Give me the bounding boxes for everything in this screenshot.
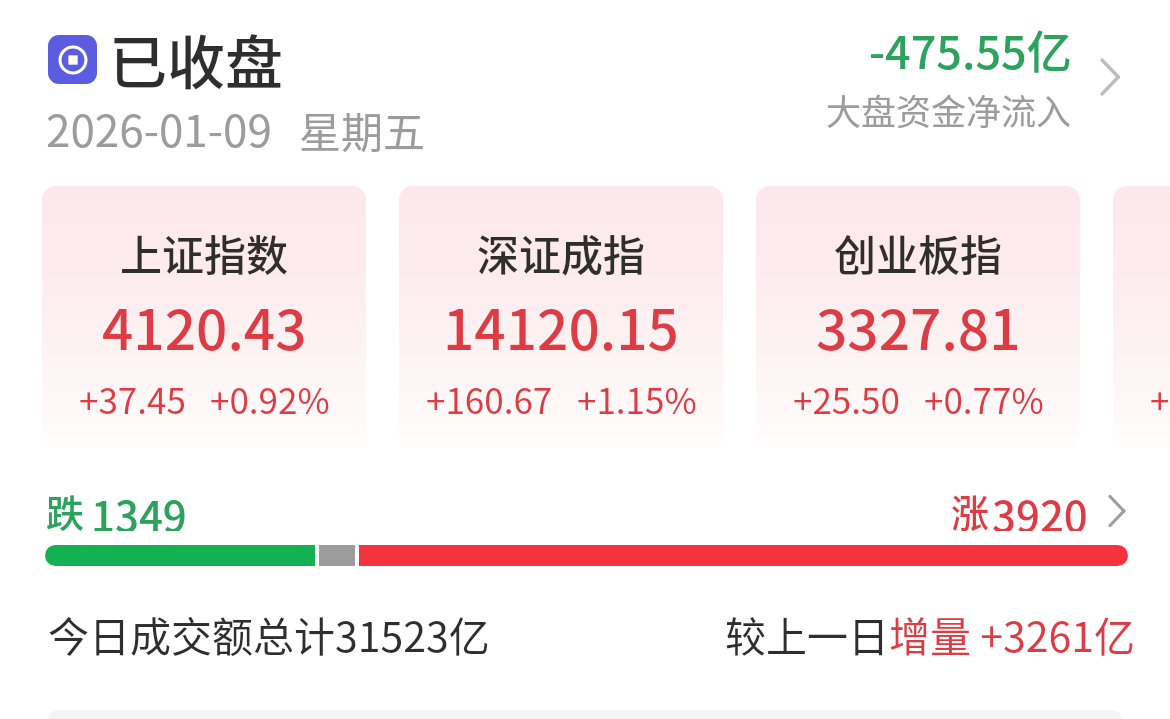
button[interactable]: -475.55亿: [800, 17, 1130, 137]
staticText: +1.15%: [577, 373, 697, 424]
button[interactable]: 创业板指: [756, 186, 1080, 448]
staticText: 大盘资金净流入: [826, 84, 1072, 135]
staticText: 星期五: [299, 99, 426, 160]
staticText: 3920: [992, 483, 1088, 531]
staticText: 4120.43: [102, 286, 307, 366]
staticText: 上证指数: [120, 222, 289, 283]
staticText: 深证成指: [477, 222, 646, 283]
staticText: 涨: [951, 483, 990, 531]
staticText: 2026-01-09: [46, 96, 272, 160]
staticText: +160.67: [426, 373, 553, 424]
staticText: 3327.81: [816, 286, 1021, 366]
button[interactable]: 科创50指: [1113, 186, 1170, 448]
staticText: +18.45: [1150, 373, 1170, 424]
staticText: 14120.15: [443, 286, 679, 366]
staticText: -475.55亿: [869, 17, 1072, 82]
other: 查看涨跌家数: [1108, 491, 1130, 531]
staticText: 已收盘: [109, 17, 284, 101]
staticText: 跌: [46, 483, 85, 531]
button[interactable]: 上证指数: [42, 186, 366, 448]
staticText: +0.77%: [924, 373, 1044, 424]
staticText: +0.92%: [210, 373, 330, 424]
button[interactable]: 涨: [951, 483, 1130, 531]
staticText: 今日成交额总计31523亿: [48, 604, 490, 663]
staticText: 创业板指: [834, 222, 1003, 283]
staticText: +37.45: [79, 373, 186, 424]
staticText: 较上一日增量 +3261亿: [725, 604, 1135, 663]
staticText: 1349: [91, 483, 187, 531]
staticText: +25.50: [793, 373, 900, 424]
other: 查看大盘资金净流入: [1100, 57, 1126, 97]
button[interactable]: 深证成指: [399, 186, 723, 448]
